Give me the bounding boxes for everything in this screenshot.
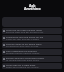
staticText: Plan a weekend trip itinerary [6,50,37,53]
staticText: Ask [29,3,36,7]
staticText: Anything [24,6,41,10]
button[interactable]: Draft an email to my whole team [2,42,62,48]
button[interactable]: Write code for a login page [2,63,62,69]
button[interactable]: Summarise this long article for me [2,35,62,41]
staticText: React and Tailwind CSS styling [6,66,39,69]
staticText: In simple everyday plain terms [6,59,40,62]
staticText: Explore ideas and get answers fast [6,31,44,34]
staticText: Draft an email to my whole team [6,43,42,46]
staticText: Paste any text and get a digest [6,38,40,41]
button[interactable]: What can you help me with today [2,28,62,34]
staticText: Explain quantum computing simply [6,57,45,60]
staticText: What can you help me with today [6,29,42,32]
button[interactable]: Explain quantum computing simply [2,56,62,62]
staticText: Write code for a login page [6,64,36,67]
staticText: Budget friendly options nearby [6,52,40,55]
staticText: Professional and short in tone [6,45,39,48]
staticText: Summarise this long article for me [6,36,44,39]
button[interactable]: Plan a weekend trip itinerary [2,49,62,55]
